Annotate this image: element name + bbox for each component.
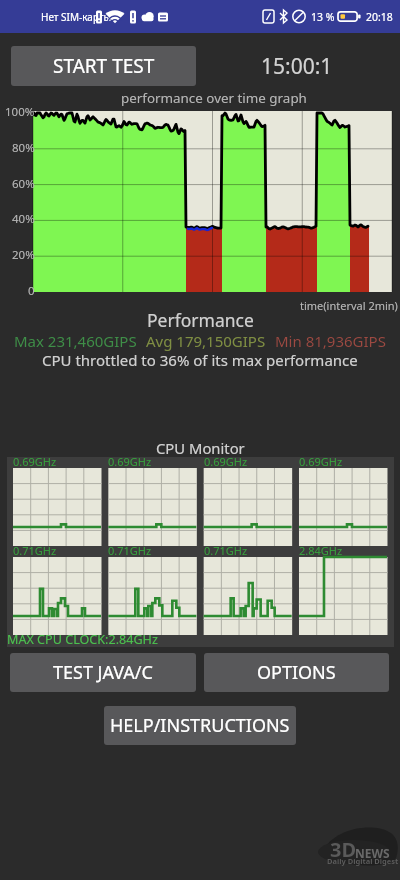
staticText: 100% [5, 104, 35, 120]
staticText: Max 231,460GIPS [14, 331, 137, 351]
staticText: 80% [12, 140, 35, 156]
staticText: START TEST [53, 53, 155, 79]
staticText: 0.69GHz [204, 454, 248, 469]
staticText: 0 [28, 283, 35, 299]
staticText: 0.69GHz [108, 454, 152, 469]
staticText: 2.84GHz [299, 543, 343, 558]
staticText: OPTIONS [257, 660, 336, 685]
staticText: TEST JAVA/C [53, 660, 153, 685]
staticText: CPU throttled to 36% of its max performa… [42, 350, 358, 370]
staticText: 0.69GHz [299, 454, 343, 469]
staticText: Min 81,936GIPS [275, 331, 386, 351]
button[interactable]: OPTIONS [204, 653, 389, 692]
staticText: Performance [147, 308, 254, 332]
staticText: Avg 179,150GIPS [146, 331, 266, 351]
staticText: CPU Monitor [156, 438, 245, 458]
button[interactable]: START TEST [11, 46, 196, 86]
staticText: 15:00:1 [261, 52, 333, 81]
button[interactable]: HELP/INSTRUCTIONS [104, 706, 296, 745]
staticText: MAX CPU CLOCK:2.84GHz [7, 631, 158, 648]
staticText: 60% [12, 176, 35, 192]
staticText: HELP/INSTRUCTIONS [110, 713, 290, 738]
staticText: NEWS [355, 845, 390, 861]
staticText: performance over time graph [121, 89, 307, 107]
staticText: Нет SIM-карты [41, 10, 112, 24]
staticText: Daily Digital Digest [327, 856, 399, 866]
staticText: 0.69GHz [13, 454, 57, 469]
staticText: 0.71GHz [204, 543, 248, 558]
staticText: 20% [12, 247, 35, 263]
staticText: 20:18 [366, 10, 393, 24]
button[interactable]: TEST JAVA/C [10, 653, 196, 692]
staticText: time(interval 2min) [300, 298, 398, 313]
staticText: 3D [330, 836, 357, 863]
staticText: 40% [12, 211, 35, 227]
staticText: 0.71GHz [108, 543, 152, 558]
staticText: 13 % [311, 10, 335, 24]
staticText: 0.71GHz [13, 543, 57, 558]
